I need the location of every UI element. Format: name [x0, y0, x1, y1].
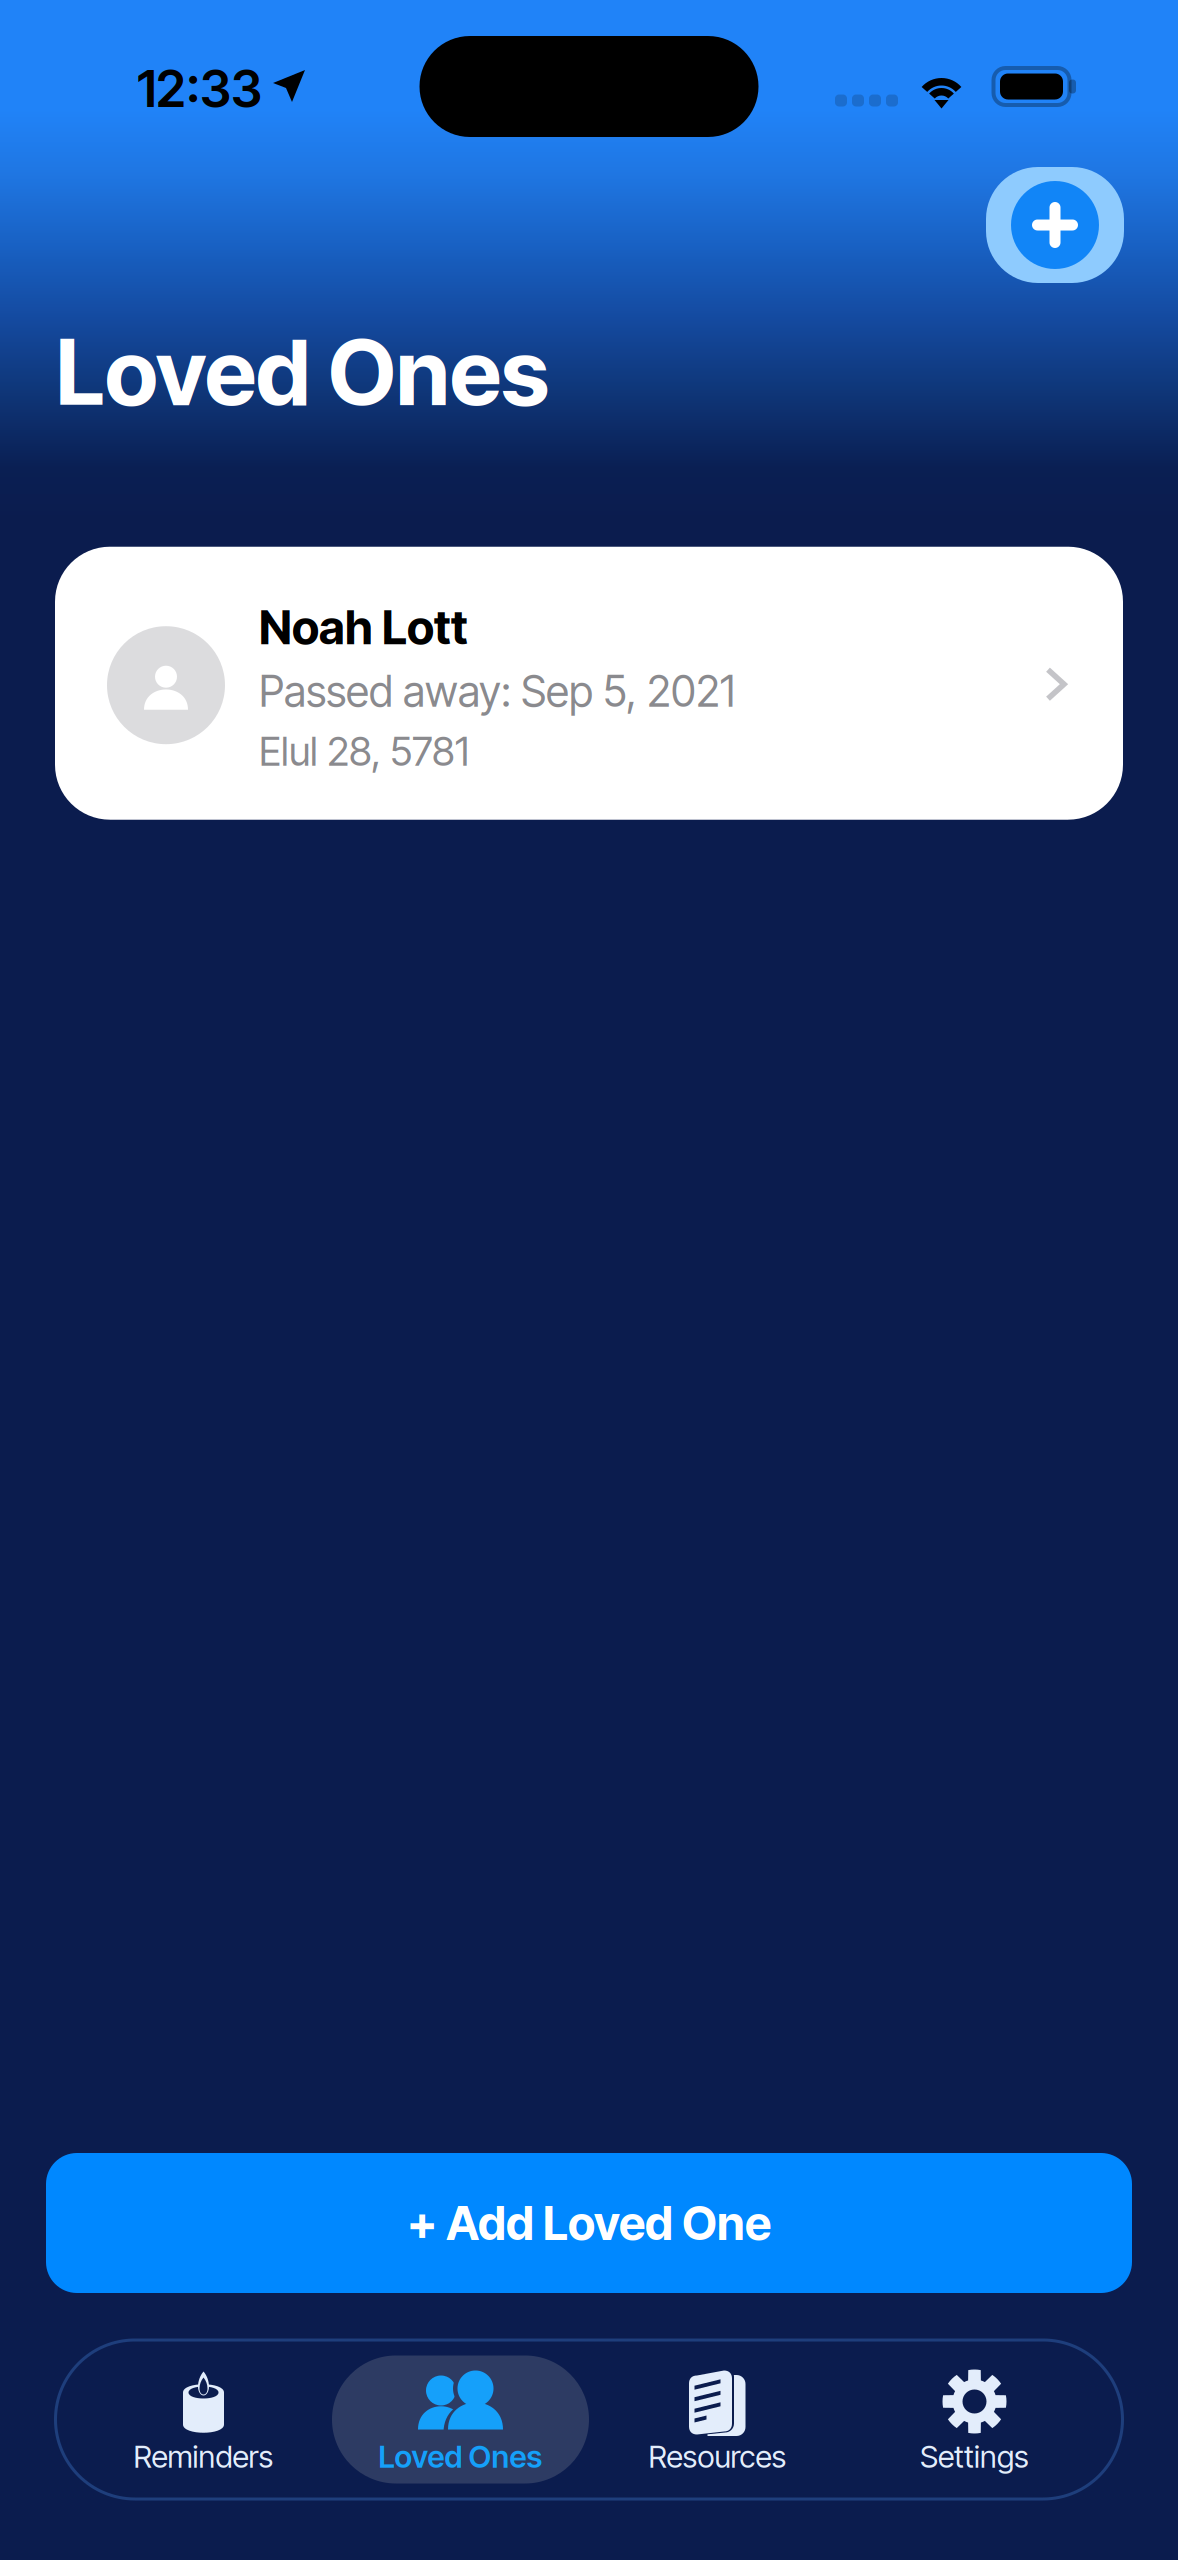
button[interactable]: Loved Ones [332, 2355, 589, 2483]
staticText: + Add Loved One [407, 2195, 771, 2251]
staticText: 12:33 [137, 58, 262, 119]
staticText: Loved Ones [378, 2438, 542, 2475]
button[interactable]: Add loved one [986, 167, 1124, 283]
staticText: Resources [648, 2438, 786, 2475]
staticText: Passed away: Sep 5, 2021 [259, 665, 735, 717]
button[interactable]: Resources [589, 2355, 846, 2483]
button[interactable]: Noah Lott [55, 547, 1123, 820]
staticText: Reminders [133, 2438, 273, 2475]
button[interactable]: Settings [846, 2355, 1103, 2483]
staticText: Elul 28, 5781 [259, 727, 469, 775]
staticText: Settings [920, 2438, 1029, 2475]
staticText: Noah Lott [259, 599, 468, 655]
staticText: Loved Ones [56, 317, 549, 427]
button[interactable]: + Add Loved One [46, 2153, 1132, 2293]
button[interactable]: Reminders [75, 2355, 332, 2483]
